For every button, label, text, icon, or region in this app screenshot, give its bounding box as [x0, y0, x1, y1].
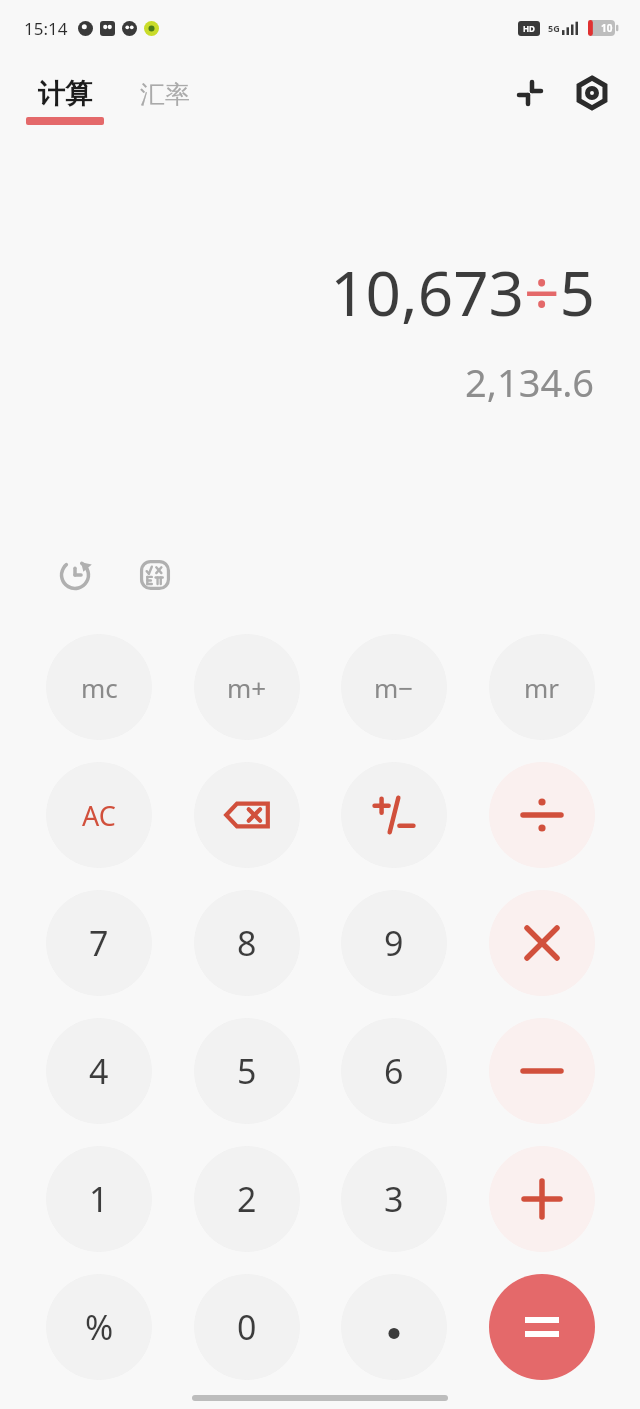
button[interactable]: %: [46, 1274, 152, 1380]
button[interactable]: Scientific: [128, 548, 182, 602]
button[interactable]: 5: [194, 1018, 300, 1124]
button[interactable]: [341, 1274, 447, 1380]
staticText: mc: [81, 670, 118, 705]
button[interactable]: 9: [341, 890, 447, 996]
staticText: m−: [374, 670, 414, 705]
button[interactable]: Collapse: [508, 71, 552, 115]
button[interactable]: 1: [46, 1146, 152, 1252]
staticText: AC: [82, 797, 116, 834]
staticText: 5: [237, 1048, 257, 1094]
staticText: 1: [89, 1176, 109, 1222]
staticText: 2,134.6: [465, 356, 595, 408]
button[interactable]: 2: [194, 1146, 300, 1252]
button[interactable]: [489, 890, 595, 996]
button[interactable]: Backspace: [194, 762, 300, 868]
button[interactable]: Equals: [489, 1274, 595, 1380]
button[interactable]: 汇率: [136, 82, 194, 121]
staticText: 3: [384, 1176, 404, 1222]
staticText: %: [85, 1304, 114, 1350]
staticText: HD: [523, 23, 535, 34]
staticText: 计算: [38, 77, 92, 111]
button[interactable]: 3: [341, 1146, 447, 1252]
button[interactable]: m−: [341, 634, 447, 740]
button[interactable]: [489, 1018, 595, 1124]
staticText: m+: [227, 670, 267, 705]
button[interactable]: AC: [46, 762, 152, 868]
staticText: 9: [384, 920, 404, 966]
staticText: mr: [524, 670, 560, 705]
button[interactable]: mc: [46, 634, 152, 740]
button[interactable]: 4: [46, 1018, 152, 1124]
staticText: 4: [89, 1048, 109, 1094]
button[interactable]: 0: [194, 1274, 300, 1380]
button[interactable]: 7: [46, 890, 152, 996]
staticText: 15:14: [24, 17, 68, 40]
staticText: 5G: [548, 22, 560, 34]
button[interactable]: m+: [194, 634, 300, 740]
button[interactable]: [489, 1146, 595, 1252]
button[interactable]: [489, 762, 595, 868]
staticText: 6: [384, 1048, 404, 1094]
button[interactable]: 8: [194, 890, 300, 996]
staticText: 汇率: [140, 79, 190, 110]
button[interactable]: [341, 762, 447, 868]
staticText: 10: [601, 21, 613, 35]
staticText: 10,673÷5: [330, 250, 595, 334]
button[interactable]: 6: [341, 1018, 447, 1124]
staticText: 2: [237, 1176, 257, 1222]
staticText: 8: [237, 920, 257, 966]
staticText: 0: [237, 1304, 257, 1350]
button[interactable]: 计算: [22, 77, 108, 125]
staticText: 7: [89, 920, 109, 966]
button[interactable]: mr: [489, 634, 595, 740]
button[interactable]: History: [48, 548, 102, 602]
button[interactable]: Settings: [570, 71, 614, 115]
